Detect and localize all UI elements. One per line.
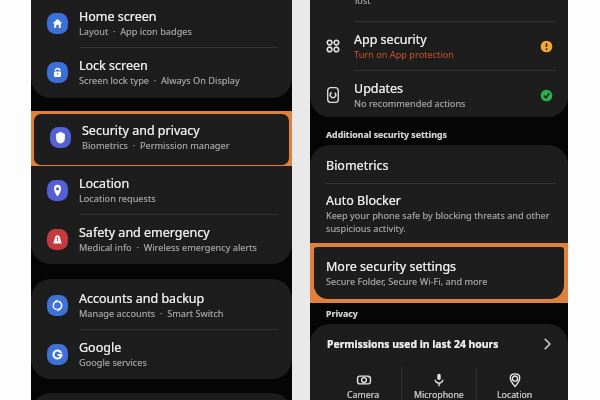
button[interactable]: Updates (310, 71, 568, 117)
button[interactable]: Security and privacy (34, 114, 289, 161)
button[interactable]: Location (477, 365, 552, 400)
staticText: Biometrics (326, 157, 389, 174)
staticText: Screen lock type · Always On Display (79, 74, 240, 87)
button[interactable]: Auto Blocker (310, 184, 568, 244)
staticText: Permissions used in last 24 hours (327, 337, 499, 351)
staticText: Layout · App icon badges (79, 25, 192, 38)
staticText: Microphone (414, 389, 464, 400)
button[interactable]: More security settings (310, 243, 568, 303)
staticText: Medical info · Wireless emergency alerts (79, 241, 257, 254)
staticText: Security and privacy (82, 122, 200, 139)
staticText: Auto Blocker (326, 192, 401, 209)
staticText: Biometrics · Permission manager (82, 139, 230, 152)
button[interactable]: Lock screen (31, 48, 292, 96)
staticText: Updates (354, 80, 404, 97)
staticText: Lock screen (79, 57, 148, 74)
staticText: Manage accounts · Smart Switch (79, 307, 224, 320)
staticText: Location (79, 175, 130, 192)
staticText: Secure Folder, Secure Wi-Fi, and more (326, 275, 488, 288)
staticText: Location (497, 389, 533, 400)
staticText: lost (355, 0, 371, 7)
staticText: Safety and emergency (79, 224, 210, 241)
button[interactable]: Safety and emergency (31, 215, 292, 263)
staticText: Camera (347, 389, 380, 400)
button[interactable]: Accounts and backup (31, 281, 292, 329)
button[interactable]: Google (31, 330, 292, 378)
staticText: Google services (79, 356, 147, 369)
button[interactable]: Permissions used in last 24 hours (310, 324, 568, 366)
staticText: Google (79, 339, 122, 356)
staticText: Turn on App protection (354, 48, 455, 61)
button[interactable]: App security (310, 22, 568, 70)
staticText: Keep your phone safe by blocking threats… (326, 209, 559, 235)
button[interactable]: Camera (326, 365, 401, 400)
button[interactable]: Home screen (31, 0, 292, 47)
button[interactable]: Biometrics (310, 145, 568, 183)
staticText: App security (354, 31, 427, 48)
staticText: Accounts and backup (79, 290, 205, 307)
button[interactable]: Security and privacy (31, 111, 292, 168)
button[interactable]: Location (31, 166, 292, 214)
other: Open permissions (539, 336, 555, 352)
staticText: Additional security settings (326, 129, 447, 141)
staticText: Home screen (79, 8, 157, 25)
button[interactable]: Microphone (402, 365, 476, 400)
staticText: Location requests (79, 192, 156, 205)
staticText: Privacy (326, 308, 358, 320)
staticText: More security settings (326, 258, 457, 275)
staticText: No recommended actions (354, 97, 466, 110)
